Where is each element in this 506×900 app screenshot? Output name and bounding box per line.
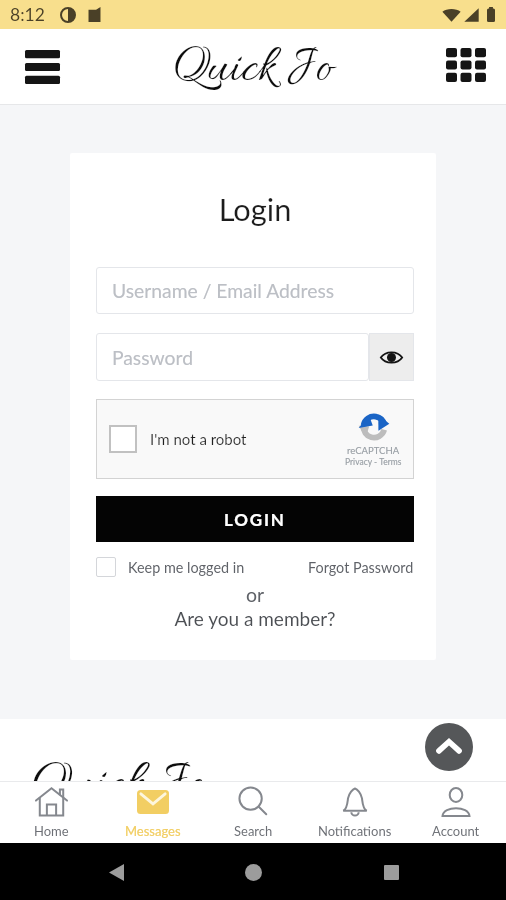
staticText: Messages (125, 823, 181, 839)
button[interactable]: I'm not a robot (96, 399, 414, 479)
staticText: Quick Jo (173, 38, 333, 102)
button[interactable]: Forgot Password (308, 559, 414, 576)
button[interactable]: Keep me logged in (96, 557, 245, 577)
staticText: reCAPTCHA (347, 445, 400, 456)
staticText: Notifications (318, 823, 392, 839)
staticText: Keep me logged in (128, 559, 245, 576)
staticText: Privacy - Terms (345, 457, 402, 467)
button[interactable]: Scroll to top (425, 723, 473, 771)
button[interactable]: Search (203, 782, 304, 843)
staticText: Account (432, 823, 480, 839)
button[interactable]: Back (94, 850, 138, 894)
staticText: Username / Email Address (112, 279, 335, 302)
button[interactable]: Username / Email Address (96, 267, 414, 314)
button[interactable]: Home (231, 850, 275, 894)
staticText: Quick Jo (31, 751, 207, 781)
button[interactable]: LOGIN (96, 496, 414, 542)
staticText: 8:12 (10, 4, 45, 25)
staticText: Login (96, 191, 414, 228)
button[interactable]: Home (0, 782, 102, 843)
button[interactable]: Account (405, 782, 506, 843)
staticText: Forgot Password (308, 559, 414, 576)
staticText: or (96, 583, 414, 606)
button[interactable]: Password (96, 333, 369, 381)
staticText: I'm not a robot (150, 430, 247, 448)
button[interactable]: Show password (369, 333, 414, 381)
staticText: Home (34, 823, 69, 839)
button[interactable]: Menu (19, 44, 65, 90)
staticText: Search (234, 823, 273, 839)
staticText: Are you a member? (96, 607, 414, 630)
button[interactable]: Apps (442, 44, 488, 90)
staticText: Password (112, 346, 193, 369)
staticText: LOGIN (224, 509, 286, 529)
button[interactable]: Notifications (304, 782, 405, 843)
button[interactable]: Are you a member? (96, 607, 414, 630)
button[interactable]: Recents (369, 850, 413, 894)
button[interactable]: Messages (102, 782, 203, 843)
